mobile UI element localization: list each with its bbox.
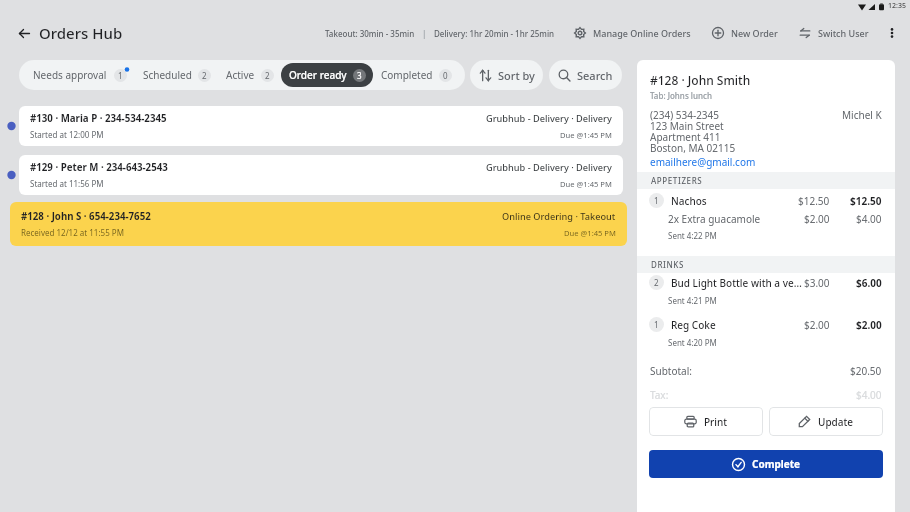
staticText: #129 · Peter M · 234-643-2543 — [30, 161, 168, 174]
staticText: Needs approval — [33, 68, 107, 82]
staticText: #128 · John S · 654-234-7652 — [21, 210, 151, 223]
staticText: Started at 11:56 PM — [30, 178, 104, 189]
button[interactable]: Switch User — [797, 23, 871, 43]
button[interactable]: More options — [880, 21, 904, 45]
staticText: $2.00 — [856, 318, 882, 332]
staticText: Active — [226, 68, 255, 82]
other: Back — [19, 28, 30, 39]
staticText: Sent 4:21 PM — [668, 295, 717, 306]
staticText: Print — [704, 415, 728, 429]
staticText: 12:35 — [888, 1, 906, 11]
staticText: Grubhub - Delivery · Delivery — [486, 161, 612, 174]
staticText: 1 — [654, 319, 659, 330]
staticText: #130 · Maria P · 234-534-2345 — [30, 112, 167, 125]
staticText: Completed — [381, 68, 433, 82]
staticText: 3 — [357, 70, 362, 81]
button[interactable]: Needs approval — [25, 63, 135, 87]
staticText: Sort by — [498, 68, 535, 83]
staticText: #128 · John Smith — [650, 72, 751, 88]
button[interactable]: Complete — [649, 450, 883, 478]
button[interactable]: Manage Online Orders — [572, 23, 693, 43]
staticText: 0 — [443, 70, 448, 81]
staticText: 2 — [202, 70, 207, 81]
button[interactable]: Update — [769, 407, 883, 436]
button[interactable]: Order ready — [281, 63, 373, 87]
staticText: Orders Hub — [39, 23, 123, 43]
staticText: $12.50 — [798, 194, 830, 208]
staticText: Grubhub - Delivery · Delivery — [486, 112, 612, 125]
staticText: Online Ordering · Takeout — [502, 210, 616, 223]
staticText: Received 12/12 at 11:55 PM — [21, 227, 124, 238]
staticText: Delivery: 1hr 20min - 1hr 25min — [434, 28, 555, 39]
button[interactable]: Sort by — [470, 60, 543, 90]
staticText: | — [422, 28, 427, 39]
button[interactable]: Search — [549, 60, 622, 90]
staticText: Scheduled — [143, 68, 192, 82]
staticText: Manage Online Orders — [593, 27, 691, 39]
staticText: Michel K — [842, 108, 882, 122]
button[interactable]: #128 · John S · 654-234-7652 — [10, 202, 627, 246]
staticText: Nachos — [671, 194, 798, 208]
staticText: 1 — [118, 70, 123, 81]
staticText: Search — [577, 68, 613, 83]
staticText: $4.00 — [856, 212, 882, 226]
staticText: Tax: — [650, 388, 856, 402]
staticText: Update — [818, 415, 854, 429]
staticText: $3.00 — [804, 276, 830, 290]
staticText: New Order — [731, 27, 778, 39]
staticText: Order ready — [289, 68, 347, 82]
staticText: Due @1:45 PM — [564, 228, 616, 238]
button[interactable]: New Order — [710, 23, 780, 43]
staticText: Due @1:45 PM — [560, 130, 612, 140]
staticText: $2.00 — [804, 212, 830, 226]
staticText: $12.50 — [850, 194, 882, 208]
staticText: Bud Light Bottle with a very l... — [671, 276, 804, 290]
staticText: Takeout: 30min - 35min — [325, 28, 415, 39]
staticText: Complete — [752, 457, 800, 471]
staticText: Reg Coke — [671, 318, 804, 332]
staticText: Sent 4:20 PM — [668, 337, 717, 348]
button[interactable]: Active — [218, 63, 281, 87]
button[interactable]: #130 · Maria P · 234-534-2345 — [19, 106, 623, 146]
staticText: Started at 12:00 PM — [30, 129, 104, 140]
staticText: 2 — [265, 70, 270, 81]
staticText: Sent 4:22 PM — [668, 230, 717, 241]
button[interactable]: Scheduled — [135, 63, 218, 87]
staticText: APPETIZERS — [651, 175, 703, 186]
staticText: $4.00 — [856, 388, 882, 402]
staticText: $6.00 — [856, 276, 882, 290]
staticText: Subtotal: — [650, 364, 850, 378]
button[interactable]: emailhere@gmail.com — [650, 155, 756, 169]
staticText: Due @1:45 PM — [560, 179, 612, 189]
button[interactable]: Print — [649, 407, 763, 436]
staticText: $20.50 — [850, 364, 882, 378]
button[interactable]: Back — [19, 23, 123, 43]
staticText: DRINKS — [651, 259, 684, 270]
button[interactable]: #129 · Peter M · 234-643-2543 — [19, 155, 623, 195]
staticText: Switch User — [818, 27, 869, 39]
staticText: Tab: Johns lunch — [650, 90, 712, 101]
staticText: 1 — [654, 195, 659, 206]
staticText: 2x Extra guacamole — [668, 212, 804, 226]
staticText: (234) 534-2345 123 Main Street Apartment… — [650, 108, 736, 155]
staticText: $2.00 — [804, 318, 830, 332]
staticText: 2 — [654, 277, 659, 288]
button[interactable]: Completed — [373, 63, 459, 87]
